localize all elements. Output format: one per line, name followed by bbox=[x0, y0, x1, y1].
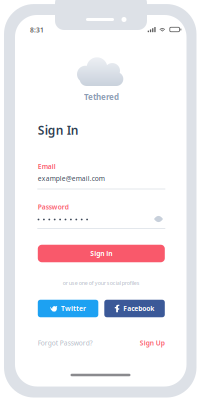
button[interactable]: Sign Up bbox=[0, 0, 199, 400]
button[interactable]: Sign in bbox=[38, 245, 165, 262]
button[interactable]: Twitter bbox=[38, 300, 98, 317]
staticText: Tethered bbox=[84, 92, 119, 102]
staticText: Sign In bbox=[38, 122, 79, 138]
staticText: Forgot Password? bbox=[38, 339, 93, 347]
staticText: or use one of your social profiles bbox=[63, 279, 140, 287]
button[interactable]: Facebook bbox=[104, 300, 165, 317]
button[interactable]: Forgot Password? bbox=[0, 0, 199, 400]
staticText: Facebook bbox=[123, 304, 154, 313]
staticText: Password bbox=[38, 203, 69, 211]
staticText: Email bbox=[38, 162, 56, 171]
staticText: 8:31 bbox=[30, 26, 44, 34]
staticText: Twitter bbox=[61, 304, 86, 313]
staticText: example@email.com bbox=[38, 174, 105, 183]
button[interactable]: Show password bbox=[150, 212, 166, 226]
staticText: Sign in bbox=[90, 249, 112, 258]
staticText: Sign Up bbox=[140, 339, 165, 347]
